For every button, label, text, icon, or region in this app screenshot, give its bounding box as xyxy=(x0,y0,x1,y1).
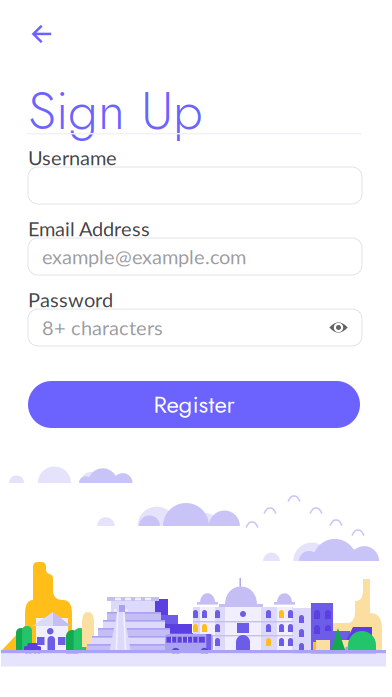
staticText: Password xyxy=(28,287,113,311)
button[interactable]: 8+ characters xyxy=(28,309,362,346)
staticText: example@example.com xyxy=(42,244,246,268)
button[interactable]: Register xyxy=(28,381,360,428)
button[interactable] xyxy=(28,167,362,204)
staticText: Username xyxy=(28,145,117,169)
button[interactable]: Back xyxy=(21,14,63,54)
button[interactable]: example@example.com xyxy=(28,238,362,275)
staticText: 8+ characters xyxy=(42,315,163,339)
staticText: Email Address xyxy=(28,216,150,240)
staticText: Sign Up xyxy=(28,72,203,149)
staticText: Register xyxy=(153,387,234,422)
